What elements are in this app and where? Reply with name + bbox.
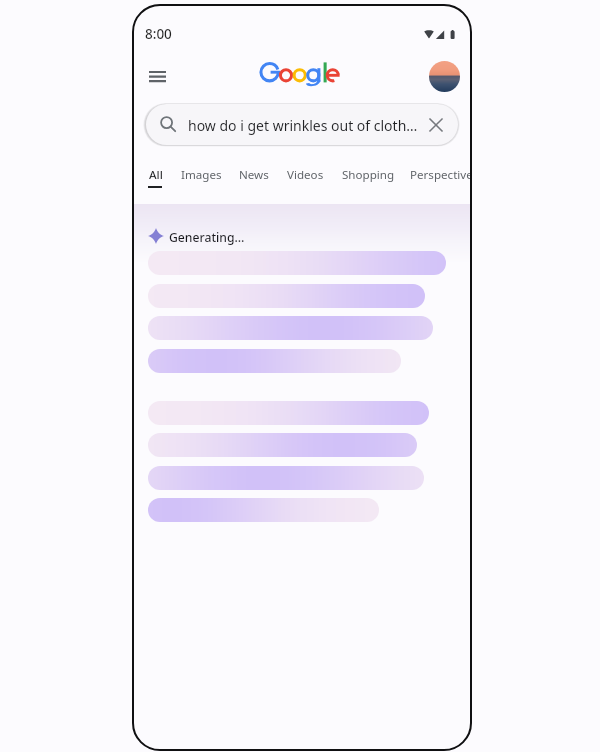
staticText: News [239,167,269,183]
button[interactable]: Videos [279,159,331,196]
button[interactable]: Shopping [334,159,400,196]
button[interactable]: All [141,159,170,196]
staticText: Videos [287,167,324,183]
staticText: how do i get wrinkles out of cloth… [188,116,418,135]
button[interactable]: News [231,159,276,196]
button[interactable]: Clear search [423,112,448,137]
staticText: Generating… [169,229,245,246]
staticText: Shopping [342,167,395,183]
staticText: Perspective [410,167,471,183]
staticText: All [149,167,163,183]
button[interactable]: Images [173,159,227,196]
button[interactable]: Perspective [402,159,471,196]
button[interactable]: how do i get wrinkles out of cloth… [146,104,458,145]
button[interactable]: Menu [141,61,173,93]
staticText: Images [181,167,222,183]
staticText: 8:00 [145,25,172,43]
button[interactable]: Account [429,61,460,92]
